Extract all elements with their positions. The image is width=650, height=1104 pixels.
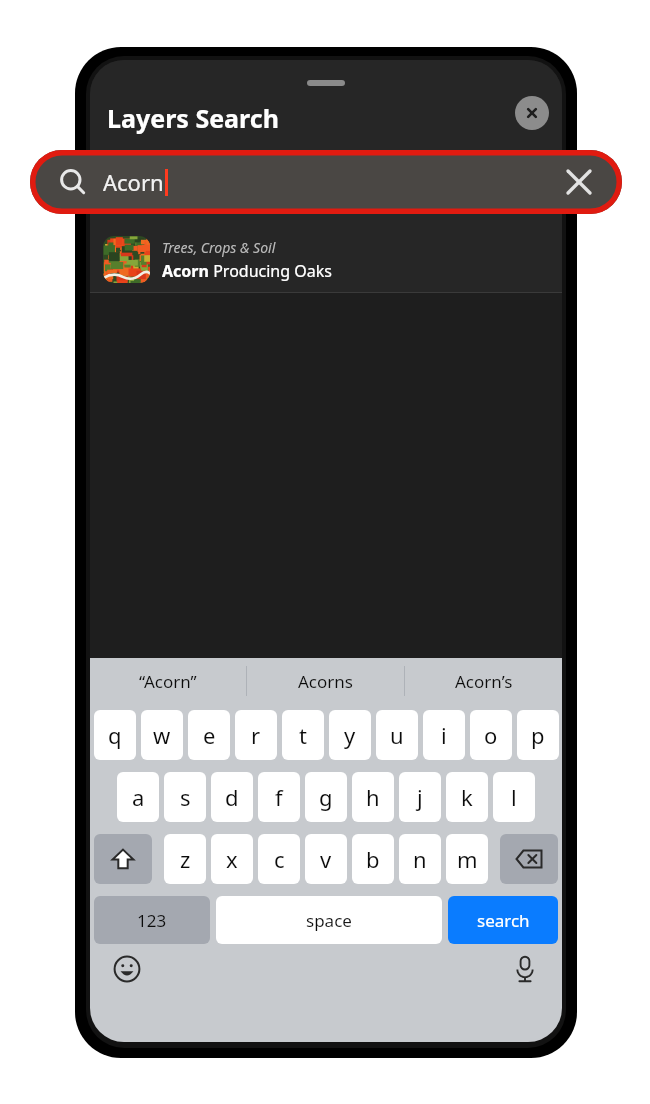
button[interactable]: y <box>329 710 371 760</box>
button[interactable]: d <box>211 772 253 822</box>
staticText: y <box>344 720 356 750</box>
staticText: p <box>531 720 545 750</box>
staticText: f <box>275 782 283 812</box>
button[interactable] <box>30 150 622 214</box>
staticText: n <box>413 844 427 874</box>
staticText: i <box>441 720 447 750</box>
staticText: v <box>320 844 332 874</box>
button[interactable]: Emoji keyboard <box>110 952 144 986</box>
button[interactable]: a <box>117 772 159 822</box>
staticText: z <box>180 844 191 874</box>
button[interactable]: Backspace <box>500 834 558 884</box>
button[interactable]: g <box>305 772 347 822</box>
button[interactable]: l <box>493 772 535 822</box>
staticText: t <box>299 720 307 750</box>
staticText: j <box>417 782 423 812</box>
button[interactable]: “Acorn” <box>90 658 246 704</box>
staticText: Producing Oaks <box>209 260 332 282</box>
staticText: u <box>390 720 404 750</box>
staticText: d <box>225 782 239 812</box>
button[interactable]: b <box>352 834 394 884</box>
staticText: Acorn’s <box>455 670 513 693</box>
button[interactable]: n <box>399 834 441 884</box>
staticText: Acorn <box>103 167 164 197</box>
button[interactable]: r <box>235 710 277 760</box>
button[interactable]: search <box>448 896 558 944</box>
staticText: m <box>457 844 478 874</box>
staticText: l <box>511 782 517 812</box>
button[interactable]: p <box>517 710 559 760</box>
button[interactable]: h <box>352 772 394 822</box>
button[interactable]: i <box>423 710 465 760</box>
staticText: Trees, Crops & Soil <box>162 238 276 257</box>
button[interactable]: v <box>305 834 347 884</box>
staticText: 123 <box>137 909 167 932</box>
staticText: e <box>203 720 216 750</box>
button[interactable]: s <box>164 772 206 822</box>
staticText: Acorn <box>162 260 209 282</box>
button[interactable]: e <box>188 710 230 760</box>
button[interactable]: k <box>446 772 488 822</box>
button[interactable]: 123 <box>94 896 210 944</box>
button[interactable]: u <box>376 710 418 760</box>
button[interactable]: m <box>446 834 488 884</box>
staticText: o <box>484 720 498 750</box>
staticText: k <box>461 782 473 812</box>
staticText: Layers Search <box>107 101 279 135</box>
staticText: search <box>477 909 530 932</box>
staticText: b <box>366 844 380 874</box>
button[interactable]: Trees, Crops & Soil <box>90 228 562 292</box>
button[interactable]: j <box>399 772 441 822</box>
button[interactable]: space <box>216 896 442 944</box>
button[interactable]: f <box>258 772 300 822</box>
button[interactable]: c <box>258 834 300 884</box>
button[interactable]: Shift <box>94 834 152 884</box>
button[interactable]: Acorns <box>247 658 404 704</box>
staticText: h <box>366 782 380 812</box>
button[interactable]: o <box>470 710 512 760</box>
staticText: w <box>153 720 171 750</box>
staticText: Acorns <box>298 670 353 693</box>
staticText: “Acorn” <box>139 670 197 693</box>
button[interactable]: Clear search <box>562 165 596 199</box>
button[interactable]: q <box>94 710 136 760</box>
staticText: q <box>108 720 122 750</box>
button[interactable]: t <box>282 710 324 760</box>
staticText: s <box>180 782 191 812</box>
staticText: a <box>132 782 145 812</box>
button[interactable]: z <box>164 834 206 884</box>
button[interactable]: Close <box>515 96 549 130</box>
staticText: x <box>226 844 238 874</box>
staticText: space <box>306 909 352 932</box>
button[interactable]: w <box>141 710 183 760</box>
staticText: c <box>274 844 285 874</box>
staticText: g <box>319 782 333 812</box>
button[interactable]: Dictate <box>508 952 542 986</box>
button[interactable]: Acorn’s <box>405 658 562 704</box>
button[interactable]: x <box>211 834 253 884</box>
staticText: r <box>251 720 261 750</box>
